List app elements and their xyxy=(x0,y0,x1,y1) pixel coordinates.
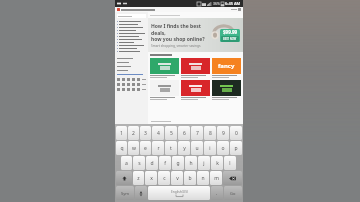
button[interactable]: r xyxy=(152,141,164,155)
button[interactable] xyxy=(117,32,146,35)
button[interactable]: l xyxy=(224,156,236,170)
button[interactable] xyxy=(117,38,146,41)
button[interactable]: o xyxy=(217,141,229,155)
button[interactable] xyxy=(117,41,146,44)
button[interactable] xyxy=(117,68,146,72)
staticText: p xyxy=(234,145,238,152)
staticText: y xyxy=(183,145,186,152)
button[interactable]: i xyxy=(204,141,216,155)
staticText: $99.99 xyxy=(223,29,238,35)
button[interactable] xyxy=(117,29,146,32)
button[interactable]: 8 xyxy=(204,126,216,140)
button[interactable]: 9 xyxy=(217,126,229,140)
button[interactable]: 3 xyxy=(140,126,151,140)
button[interactable]: Go xyxy=(224,186,242,200)
button[interactable]: p xyxy=(230,141,242,155)
button[interactable]: Backspace xyxy=(223,171,242,185)
button[interactable]: v xyxy=(171,171,183,185)
button[interactable]: m xyxy=(210,171,222,185)
button[interactable]: Voice input xyxy=(135,186,147,200)
button[interactable] xyxy=(117,44,146,47)
button[interactable]: g xyxy=(172,156,184,170)
button[interactable]: u xyxy=(191,141,203,155)
staticText: f xyxy=(164,160,166,167)
button[interactable] xyxy=(117,26,146,29)
button[interactable]: $99.99 xyxy=(148,18,243,52)
button[interactable] xyxy=(117,35,146,38)
button[interactable]: j xyxy=(198,156,210,170)
button[interactable]: t xyxy=(165,141,177,155)
button[interactable]: English(US) xyxy=(148,186,210,200)
button[interactable]: z xyxy=(133,171,144,185)
button[interactable] xyxy=(181,58,210,78)
staticText: 6 xyxy=(183,130,186,137)
button[interactable] xyxy=(117,50,146,53)
button[interactable]: f xyxy=(159,156,171,170)
button[interactable]: 4 xyxy=(152,126,164,140)
button[interactable]: 2 xyxy=(128,126,139,140)
button[interactable]: s xyxy=(133,156,145,170)
staticText: Go xyxy=(230,191,236,196)
button[interactable] xyxy=(117,64,146,68)
button[interactable]: 7 xyxy=(191,126,203,140)
button[interactable]: Sym xyxy=(116,186,134,200)
staticText: 6:45 AM xyxy=(225,1,241,6)
button[interactable] xyxy=(117,14,146,18)
button[interactable]: k xyxy=(211,156,223,170)
button[interactable]: q xyxy=(116,141,127,155)
button[interactable]: x xyxy=(145,171,157,185)
button[interactable]: c xyxy=(158,171,170,185)
button[interactable] xyxy=(150,58,179,78)
button[interactable]: d xyxy=(146,156,158,170)
button[interactable] xyxy=(117,23,146,26)
button[interactable] xyxy=(115,7,243,12)
button[interactable]: 0 xyxy=(230,126,242,140)
staticText: How I finds the best deals, how you shop… xyxy=(151,23,211,42)
button[interactable]: Shift xyxy=(116,171,132,185)
button[interactable]: fancy xyxy=(212,58,241,78)
button[interactable]: 5 xyxy=(165,126,177,140)
button[interactable]: y xyxy=(178,141,190,155)
staticText: j xyxy=(203,160,205,167)
button[interactable] xyxy=(117,47,146,50)
button[interactable] xyxy=(212,80,241,100)
staticText: m xyxy=(214,175,219,182)
staticText: 36% xyxy=(213,1,220,6)
button[interactable]: w xyxy=(128,141,139,155)
button[interactable] xyxy=(117,56,146,60)
staticText: h xyxy=(189,160,193,167)
button[interactable]: 1 xyxy=(116,126,127,140)
button[interactable] xyxy=(150,80,179,100)
staticText: 8 xyxy=(209,130,212,137)
button[interactable] xyxy=(117,20,146,23)
staticText: 2 xyxy=(132,130,135,137)
button[interactable]: Period xyxy=(211,186,223,200)
button[interactable] xyxy=(117,60,146,64)
button[interactable]: h xyxy=(185,156,197,170)
staticText: English(US) xyxy=(171,190,188,194)
staticText: x xyxy=(150,175,153,182)
button[interactable]: a xyxy=(121,156,132,170)
staticText: r xyxy=(157,145,160,152)
button[interactable] xyxy=(181,80,210,100)
button[interactable]: 6 xyxy=(178,126,190,140)
button[interactable]: e xyxy=(140,141,151,155)
button[interactable]: b xyxy=(184,171,196,185)
staticText: b xyxy=(188,175,192,182)
button[interactable]: n xyxy=(197,171,209,185)
